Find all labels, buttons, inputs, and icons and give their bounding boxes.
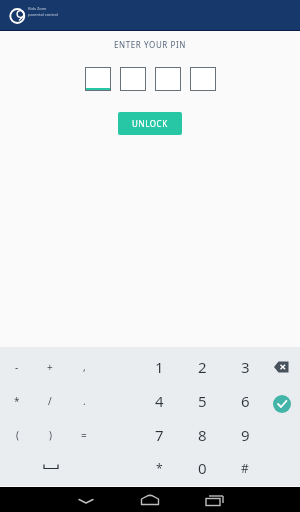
staticText: ,	[83, 360, 86, 374]
button[interactable]	[136, 487, 164, 512]
staticText: .	[83, 394, 86, 408]
staticText: 7	[155, 425, 164, 445]
button[interactable]: -	[1, 350, 33, 384]
staticText: 0	[198, 458, 207, 478]
button[interactable]: ,	[68, 350, 100, 384]
staticText: 9	[241, 425, 250, 445]
staticText: ENTER YOUR PIN	[114, 39, 187, 50]
button[interactable]: +	[34, 350, 66, 384]
button[interactable]	[72, 487, 100, 512]
staticText: parental control	[28, 12, 59, 17]
staticText: 3	[241, 357, 250, 377]
staticText: 2	[198, 357, 207, 377]
button[interactable]	[155, 67, 181, 91]
staticText: *	[156, 460, 163, 476]
button[interactable]: /	[34, 384, 66, 418]
staticText: /	[48, 394, 52, 408]
button[interactable]: 7	[143, 418, 175, 452]
staticText: 4	[155, 391, 164, 411]
button[interactable]	[200, 487, 228, 512]
staticText: 8	[198, 425, 207, 445]
button[interactable]	[37, 453, 65, 481]
staticText: )	[49, 428, 52, 442]
staticText: -	[15, 360, 19, 374]
button[interactable]: 4	[143, 384, 175, 418]
staticText: +	[47, 360, 53, 374]
button[interactable]: 3	[229, 350, 261, 384]
button[interactable]: 0	[186, 451, 218, 485]
staticText: UNLOCK	[132, 118, 168, 129]
button[interactable]: 8	[186, 418, 218, 452]
button[interactable]	[120, 67, 146, 91]
staticText: 5	[198, 391, 207, 411]
button[interactable]	[267, 353, 297, 381]
staticText: 6	[241, 391, 250, 411]
staticText: *	[14, 394, 20, 408]
staticText: =	[81, 428, 87, 442]
button[interactable]: *	[143, 451, 175, 485]
button[interactable]: .	[68, 384, 100, 418]
button[interactable]: 1	[143, 350, 175, 384]
button[interactable]: =	[68, 418, 100, 452]
button[interactable]: (	[1, 418, 33, 452]
button[interactable]: UNLOCK	[118, 112, 182, 135]
button[interactable]: 5	[186, 384, 218, 418]
staticText: (	[16, 428, 19, 442]
button[interactable]: 6	[229, 384, 261, 418]
staticText: Kids Zone	[28, 6, 47, 11]
button[interactable]: *	[1, 384, 33, 418]
button[interactable]: )	[34, 418, 66, 452]
staticText: #	[241, 460, 249, 476]
staticText: 1	[155, 357, 164, 377]
button[interactable]: 2	[186, 350, 218, 384]
button[interactable]	[190, 67, 216, 91]
button[interactable]	[267, 389, 297, 419]
button[interactable]	[85, 67, 111, 91]
button[interactable]: #	[229, 451, 261, 485]
button[interactable]: 9	[229, 418, 261, 452]
